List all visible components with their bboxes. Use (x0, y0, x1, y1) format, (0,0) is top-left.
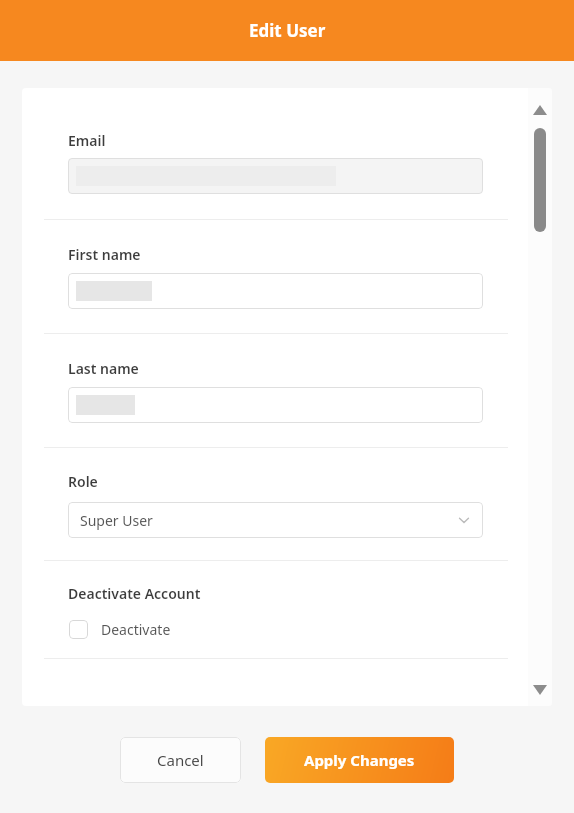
button[interactable] (68, 387, 483, 423)
button[interactable]: Scroll down (533, 685, 547, 695)
staticText: Super User (80, 511, 153, 530)
staticText: Last name (68, 359, 139, 378)
staticText: First name (68, 245, 141, 264)
button[interactable]: Apply Changes (265, 737, 454, 783)
button[interactable] (534, 128, 546, 232)
button[interactable] (68, 158, 483, 194)
staticText: Role (68, 472, 98, 491)
button[interactable]: Scroll up (533, 105, 547, 115)
staticText: Cancel (157, 750, 204, 770)
staticText: Apply Changes (304, 750, 415, 770)
button[interactable]: Super User (68, 502, 483, 538)
staticText: Email (68, 131, 106, 150)
staticText: Edit User (249, 19, 326, 42)
staticText: Deactivate Account (68, 584, 201, 603)
staticText: Deactivate (101, 620, 171, 639)
button[interactable]: Deactivate (69, 616, 171, 642)
button[interactable] (68, 273, 483, 309)
button[interactable]: Cancel (120, 737, 241, 783)
